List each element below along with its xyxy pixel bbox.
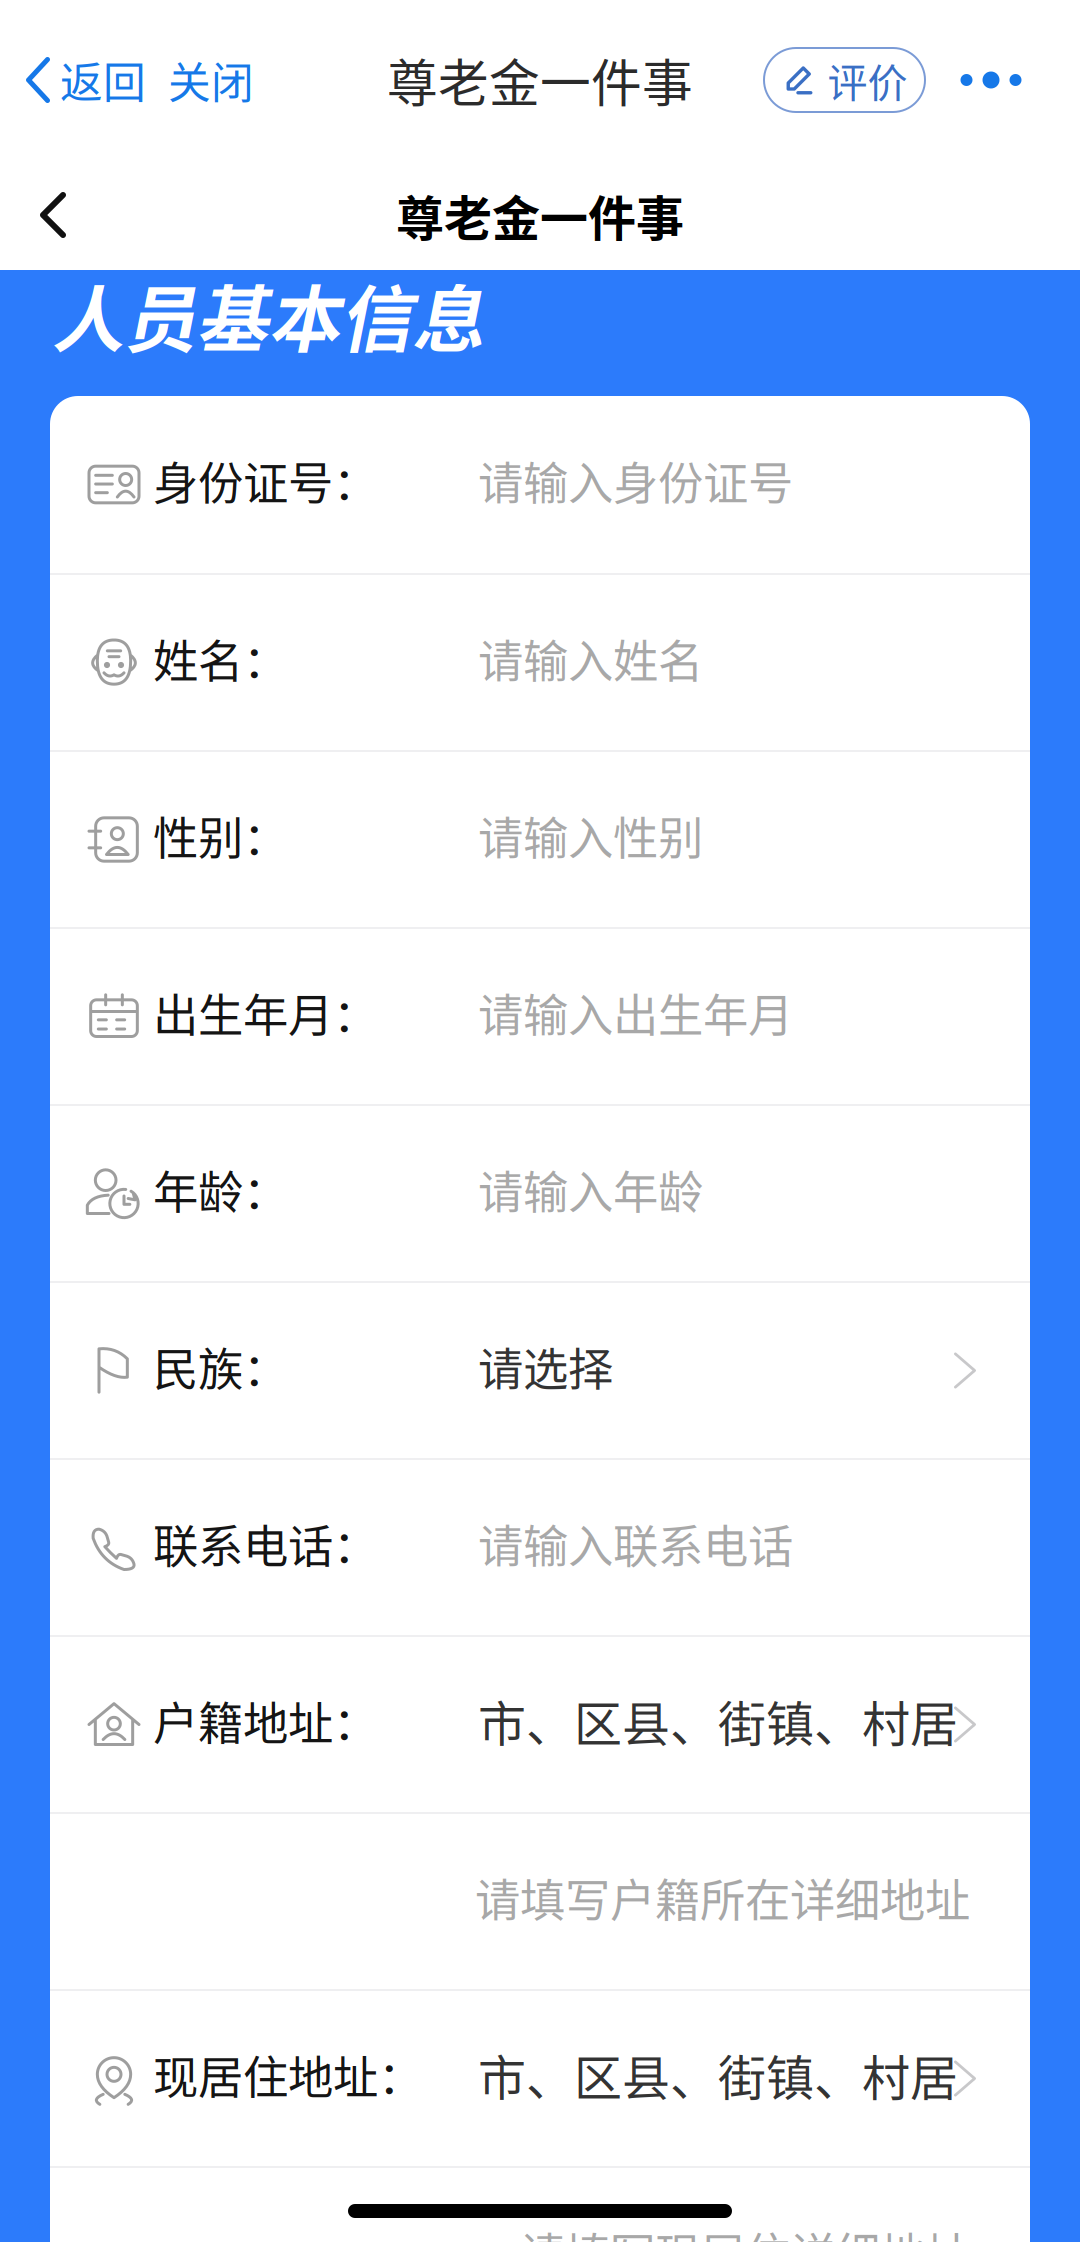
staticText: 请填写户籍所在详细地址 (475, 1865, 970, 1930)
staticText: 返回 (60, 49, 146, 111)
staticText: 请填写现居住详细地址 (520, 2219, 970, 2242)
staticText: 联系电话： (153, 1511, 378, 1576)
staticText: 民族： (153, 1334, 288, 1399)
button[interactable]: 请填写户籍所在详细地址 (50, 1814, 1030, 1989)
staticText: 身份证号： (153, 448, 378, 513)
staticText: 请输入性别 (478, 803, 703, 868)
staticText: 尊老金一件事 (387, 43, 693, 117)
staticText: 姓名： (153, 626, 288, 691)
button[interactable]: Back (0, 162, 106, 268)
staticText: 性别： (153, 803, 288, 868)
staticText: 评价 (827, 51, 907, 109)
staticText: 年龄： (153, 1157, 288, 1222)
staticText: 请选择 (478, 1334, 613, 1399)
staticText: 市、区县、街镇、村居 (478, 1686, 958, 1755)
button[interactable]: 户籍地址： (50, 1637, 1030, 1812)
button[interactable]: 性别： (50, 752, 1030, 927)
staticText: 尊老金一件事 (396, 180, 684, 250)
button[interactable]: 联系电话： (50, 1460, 1030, 1635)
button[interactable]: 姓名： (50, 575, 1030, 750)
button[interactable]: 年龄： (50, 1106, 1030, 1281)
button[interactable]: 请填写现居住详细地址 (50, 2168, 1030, 2242)
staticText: 户籍地址： (153, 1688, 378, 1753)
button[interactable]: 现居住地址： (50, 1991, 1030, 2166)
staticText: 请输入身份证号 (478, 448, 793, 513)
staticText: 人员基本信息 (52, 262, 484, 366)
button[interactable]: 关闭 (146, 29, 264, 131)
staticText: 现居住地址： (153, 2042, 423, 2107)
button[interactable]: More options (925, 50, 1021, 110)
staticText: 关闭 (168, 49, 254, 111)
staticText: 市、区县、街镇、村居 (478, 2040, 958, 2109)
button[interactable]: 评价 (764, 48, 925, 112)
staticText: 请输入年龄 (478, 1157, 703, 1222)
staticText: 请输入联系电话 (478, 1511, 793, 1576)
button[interactable]: 返回 (0, 29, 146, 131)
button[interactable]: 民族： (50, 1283, 1030, 1458)
button[interactable]: 身份证号： (50, 396, 1030, 573)
staticText: 请输入姓名 (478, 626, 703, 691)
staticText: 出生年月： (153, 980, 378, 1045)
staticText: 请输入出生年月 (478, 980, 793, 1045)
button[interactable]: 出生年月： (50, 929, 1030, 1104)
